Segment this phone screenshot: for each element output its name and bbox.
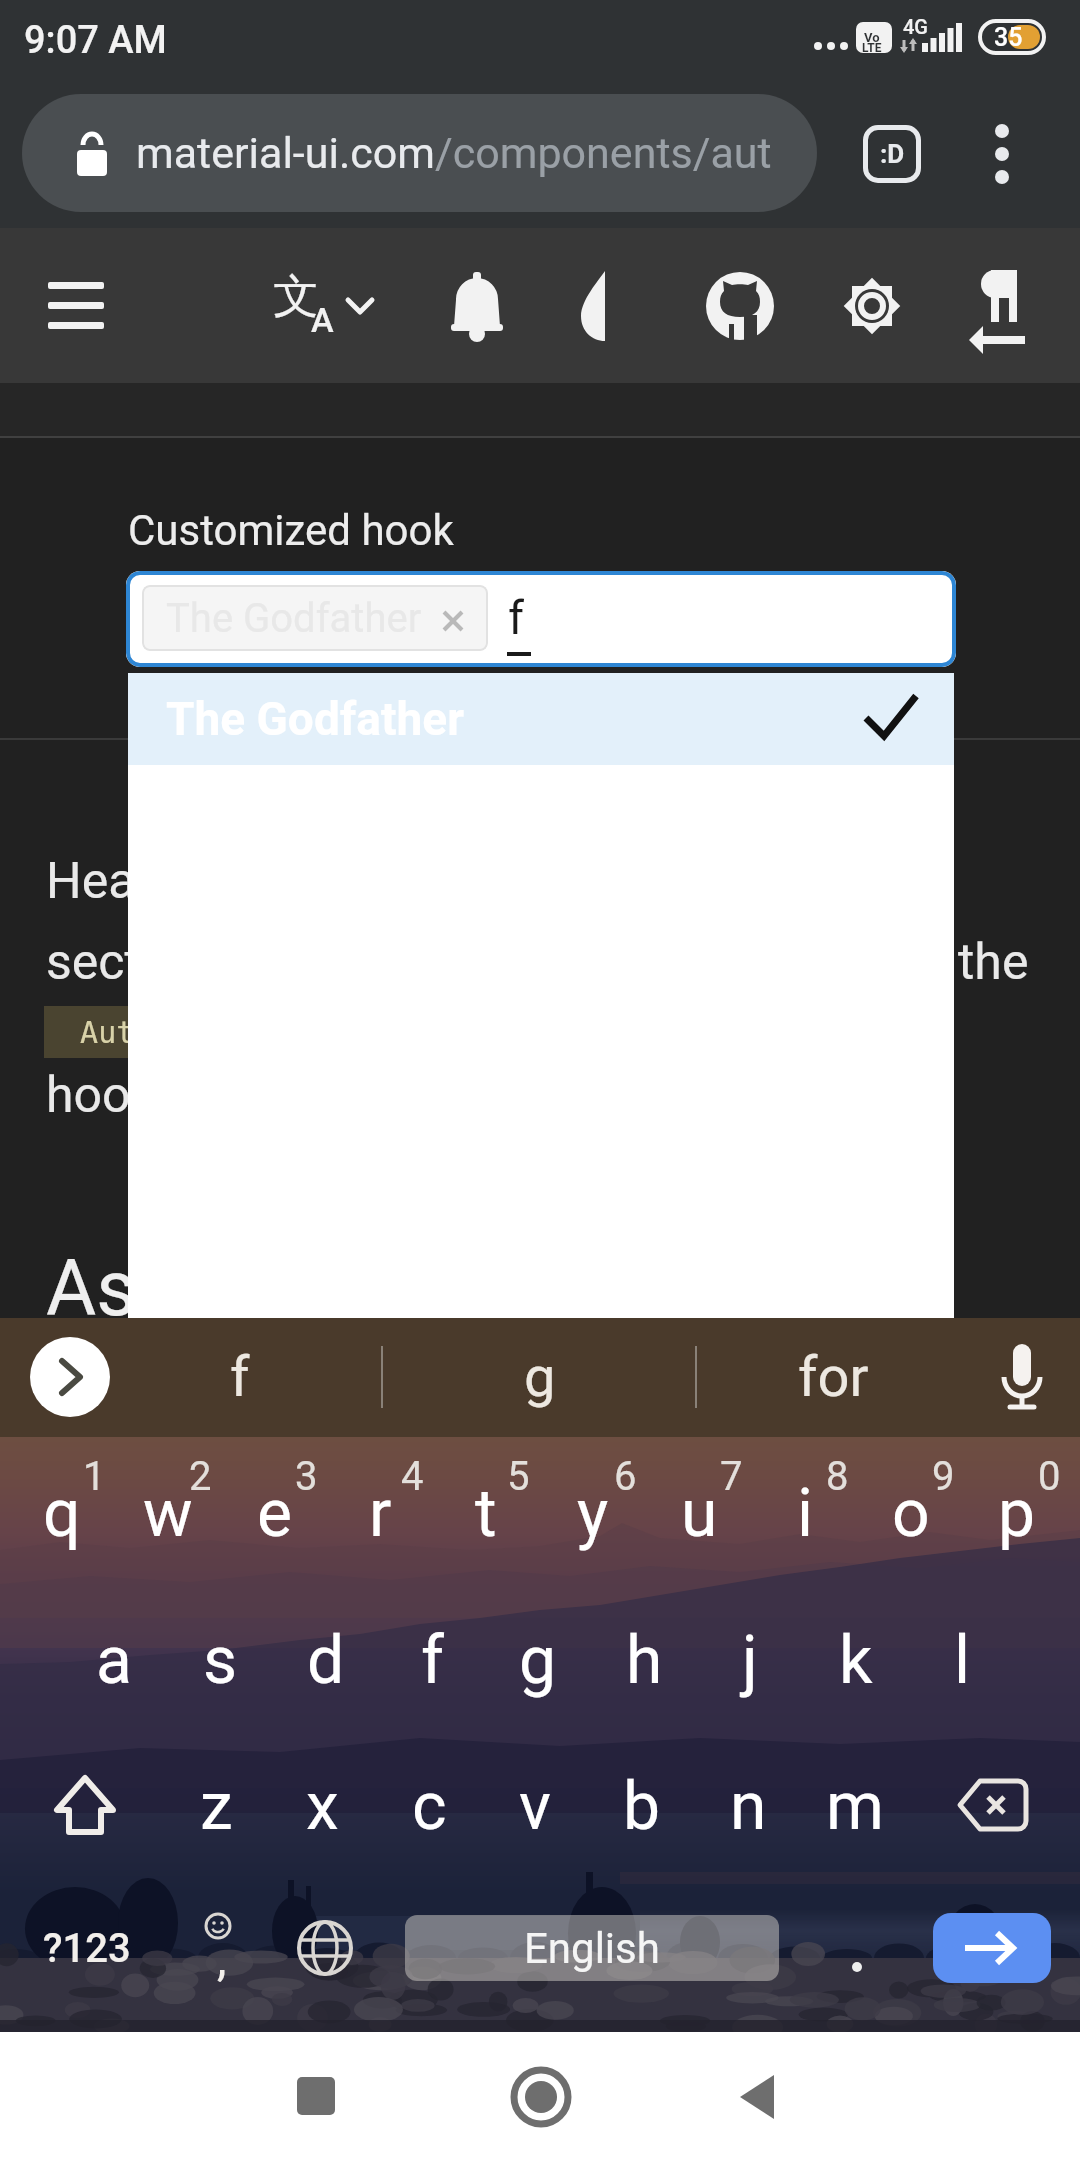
button[interactable]: u xyxy=(647,1443,751,1583)
button[interactable] xyxy=(836,270,908,342)
button[interactable] xyxy=(293,1916,357,1980)
button[interactable]: c xyxy=(377,1736,481,1876)
button[interactable] xyxy=(142,585,488,651)
button[interactable] xyxy=(969,264,1041,352)
button[interactable] xyxy=(571,268,639,344)
button[interactable] xyxy=(405,1915,779,1981)
staticText: f xyxy=(508,591,524,645)
button[interactable]: v xyxy=(483,1736,587,1876)
button[interactable]: p xyxy=(965,1443,1069,1583)
staticText: A xyxy=(311,300,334,340)
button[interactable]: j xyxy=(698,1590,802,1730)
staticText: n xyxy=(730,1768,767,1845)
staticText: c xyxy=(412,1768,447,1845)
staticText: o xyxy=(892,1475,930,1552)
staticText: 7 xyxy=(720,1453,743,1500)
button[interactable]: e xyxy=(222,1443,326,1583)
button[interactable]: h xyxy=(592,1590,696,1730)
button[interactable]: x xyxy=(270,1736,374,1876)
staticText: for xyxy=(798,1344,869,1410)
button[interactable] xyxy=(40,270,112,342)
staticText: f xyxy=(421,1622,444,1699)
staticText: :D xyxy=(880,139,905,169)
button[interactable]: :D xyxy=(863,125,921,183)
staticText: 6 xyxy=(614,1453,637,1500)
staticText: b xyxy=(623,1768,661,1845)
button[interactable] xyxy=(980,118,1024,190)
staticText: hoo xyxy=(46,1066,131,1125)
button[interactable]: s xyxy=(168,1590,272,1730)
staticText: i xyxy=(797,1475,814,1552)
button[interactable]: y xyxy=(541,1443,645,1583)
button[interactable]: g xyxy=(486,1590,590,1730)
button[interactable] xyxy=(280,2060,352,2132)
button[interactable] xyxy=(22,94,817,212)
button[interactable] xyxy=(128,673,954,765)
staticText: w xyxy=(143,1475,193,1552)
button[interactable]: r xyxy=(328,1443,432,1583)
staticText: 9 xyxy=(932,1453,955,1500)
button[interactable] xyxy=(992,1336,1052,1420)
button[interactable] xyxy=(45,1770,125,1846)
staticText: d xyxy=(307,1622,345,1699)
staticText: u xyxy=(681,1475,718,1552)
staticText: r xyxy=(369,1475,392,1552)
button[interactable]: n xyxy=(696,1736,800,1876)
staticText: g xyxy=(519,1622,557,1699)
staticText: 9:07 AM xyxy=(24,18,167,63)
button[interactable]: f xyxy=(380,1590,484,1730)
button[interactable]: m xyxy=(803,1736,907,1876)
button[interactable] xyxy=(933,1913,1051,1983)
staticText: Vo xyxy=(864,30,880,45)
staticText: 4G xyxy=(903,15,928,38)
staticText: t xyxy=(475,1475,497,1552)
staticText: s xyxy=(203,1622,238,1699)
staticText: x xyxy=(306,1768,339,1845)
button[interactable] xyxy=(250,260,390,352)
button[interactable]: w xyxy=(116,1443,220,1583)
staticText: 文 xyxy=(273,268,319,326)
button[interactable] xyxy=(704,270,776,342)
staticText: 8 xyxy=(826,1453,849,1500)
staticText: k xyxy=(839,1622,873,1699)
button[interactable] xyxy=(30,1337,110,1417)
button[interactable]: k xyxy=(804,1590,908,1730)
staticText: e xyxy=(257,1475,292,1552)
staticText: z xyxy=(200,1768,233,1845)
button[interactable]: ?123 xyxy=(0,1888,287,2008)
staticText: 35 xyxy=(994,23,1023,52)
button[interactable]: f xyxy=(40,1317,440,1437)
button[interactable]: b xyxy=(590,1736,694,1876)
button[interactable] xyxy=(722,2060,794,2132)
button[interactable]: i xyxy=(753,1443,857,1583)
staticText: the xyxy=(958,933,1029,992)
staticText: As xyxy=(46,1244,136,1334)
staticText: , xyxy=(217,1930,227,1986)
staticText: 0 xyxy=(1038,1453,1061,1500)
staticText: 2 xyxy=(189,1453,212,1500)
staticText: material-ui.com/components/aut xyxy=(136,128,772,178)
staticText: Auto xyxy=(44,1015,128,1050)
button[interactable] xyxy=(190,1900,250,2000)
button[interactable] xyxy=(952,1776,1036,1838)
button[interactable]: for xyxy=(633,1317,1033,1437)
staticText: 4 xyxy=(401,1453,424,1500)
staticText: v xyxy=(519,1768,551,1845)
button[interactable]: o xyxy=(859,1443,963,1583)
staticText: LTE xyxy=(862,41,882,55)
button[interactable] xyxy=(126,571,956,667)
button[interactable] xyxy=(505,2060,577,2132)
button[interactable]: g xyxy=(340,1317,740,1437)
button[interactable]: l xyxy=(910,1590,1014,1730)
button[interactable]: z xyxy=(164,1736,268,1876)
button[interactable]: q xyxy=(10,1443,114,1583)
button[interactable]: a xyxy=(62,1590,166,1730)
staticText: The Godfather xyxy=(166,595,422,642)
staticText: 5 xyxy=(507,1453,530,1500)
button[interactable]: t xyxy=(434,1443,538,1583)
button[interactable] xyxy=(441,270,513,342)
staticText: 3 xyxy=(295,1453,318,1500)
button[interactable] xyxy=(840,1945,880,1989)
button[interactable]: d xyxy=(274,1590,378,1730)
staticText: l xyxy=(954,1622,971,1699)
